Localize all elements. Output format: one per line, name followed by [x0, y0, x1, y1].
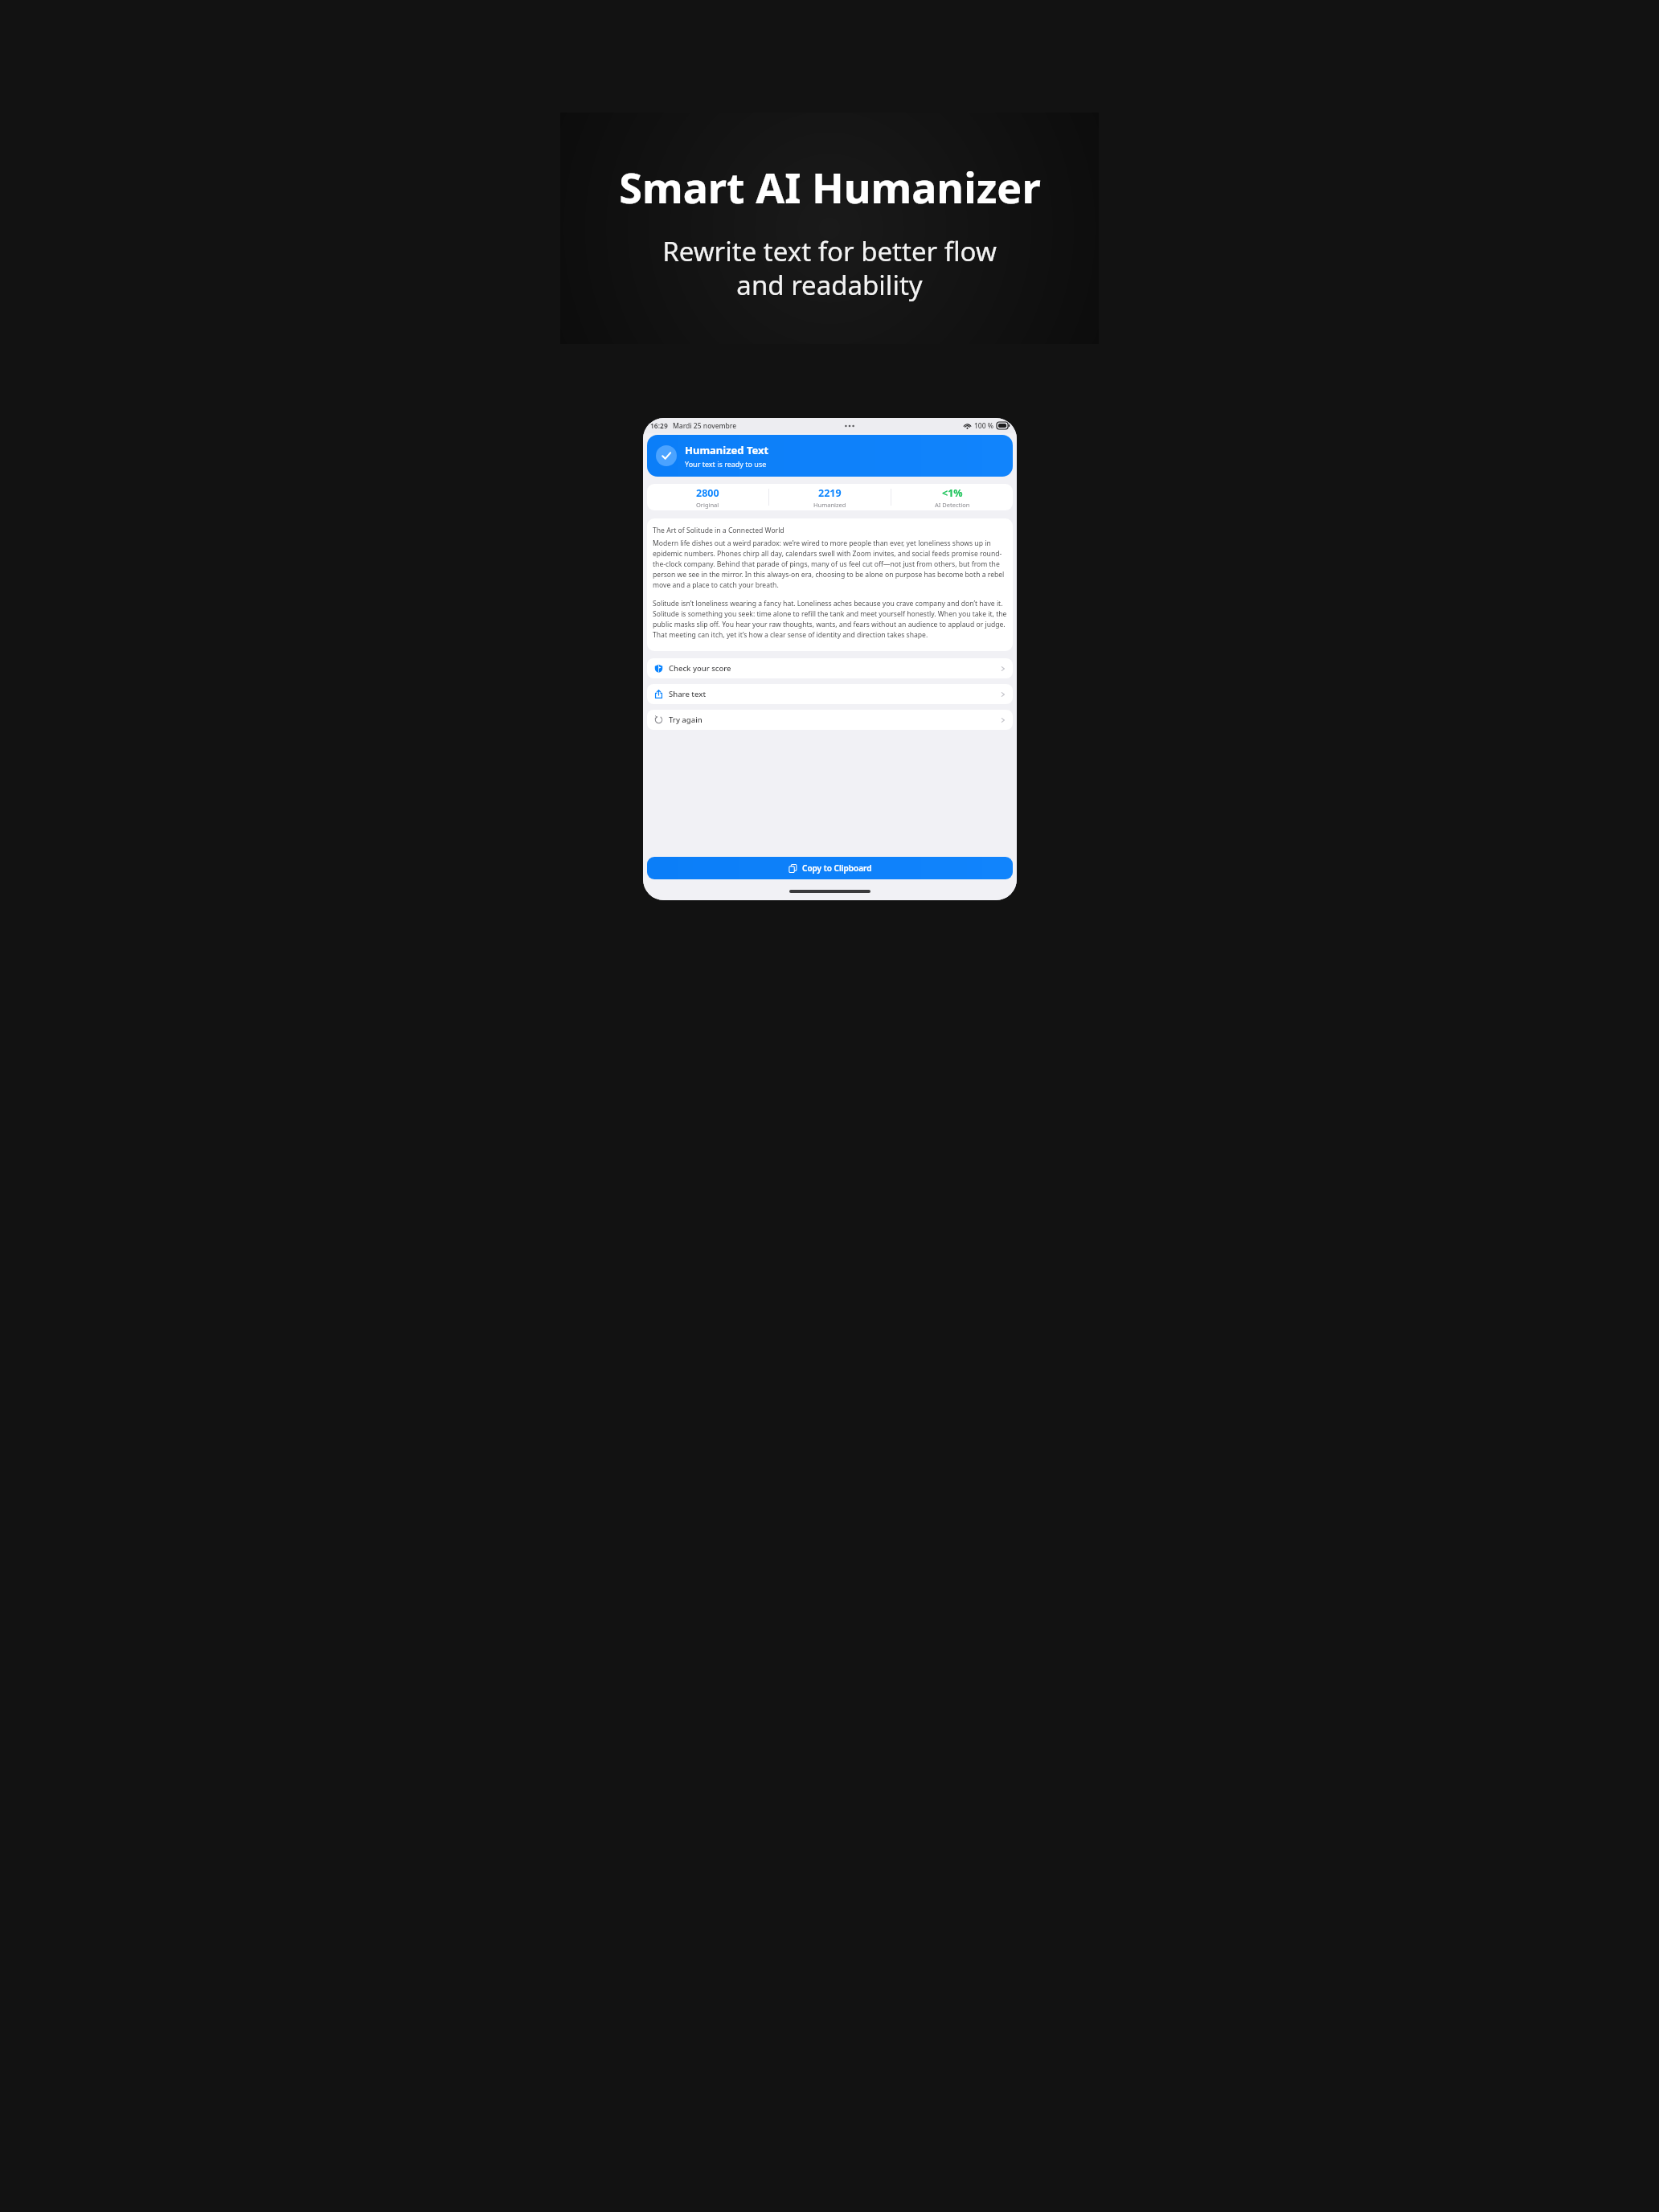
staticText: Check your score [669, 663, 731, 674]
staticText: Rewrite text for better flow and readabi… [662, 233, 997, 303]
staticText: Original [696, 501, 719, 509]
other: Try again [654, 715, 663, 724]
staticText: Your text is ready to use [685, 459, 767, 469]
staticText: The Art of Solitude in a Connected World [653, 526, 784, 535]
button[interactable]: Humanized Text [647, 435, 1013, 477]
button[interactable]: Share text [647, 684, 1013, 704]
staticText: 100 % [974, 421, 994, 431]
button[interactable]: Check your score [647, 658, 1013, 678]
staticText: Share text [669, 689, 707, 699]
button[interactable]: Try again [647, 710, 1013, 730]
staticText: 16:29 [650, 421, 668, 431]
staticText: Solitude isn’t loneliness wearing a fanc… [653, 599, 1007, 640]
staticText: <1% [942, 486, 963, 500]
other: Check your score [654, 664, 663, 673]
button[interactable]: Copy to Clipboard [647, 857, 1013, 879]
staticText: Copy to Clipboard [802, 862, 872, 874]
staticText: Modern life dishes out a weird paradox: … [653, 539, 1007, 590]
staticText: Humanized [813, 501, 846, 509]
staticText: Mardi 25 novembre [673, 421, 737, 431]
other: Share text [654, 690, 663, 698]
staticText: Try again [669, 715, 703, 725]
staticText: AI Detection [935, 501, 970, 509]
staticText: 2800 [696, 486, 719, 500]
staticText: 2219 [818, 486, 842, 500]
staticText: Smart AI Humanizer [619, 158, 1041, 215]
staticText: Humanized Text [685, 443, 769, 457]
